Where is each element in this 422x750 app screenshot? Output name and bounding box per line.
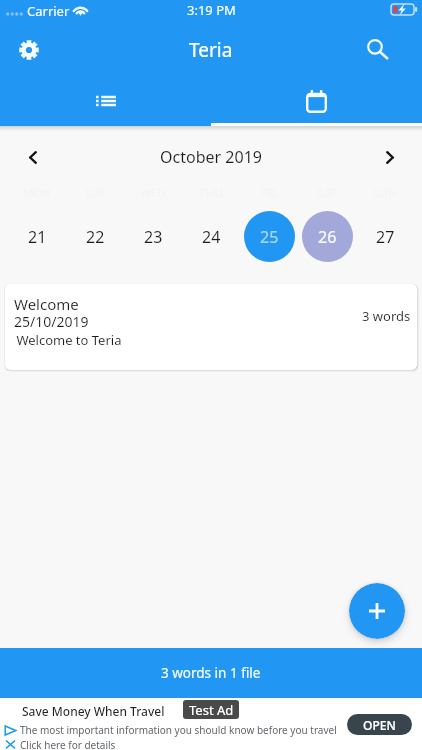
- button[interactable]: 23: [124, 210, 182, 262]
- staticText: 21: [28, 226, 47, 248]
- staticText: 3 words in 1 file: [161, 664, 261, 682]
- staticText: 24: [202, 226, 221, 248]
- button[interactable]: Calendar view: [211, 76, 422, 126]
- button[interactable]: 24: [182, 210, 240, 262]
- button[interactable]: 25: [240, 210, 298, 262]
- staticText: 23: [144, 226, 163, 248]
- staticText: 26: [318, 226, 337, 248]
- button[interactable]: 21: [8, 210, 66, 262]
- staticText: 25/10/2019: [14, 312, 89, 331]
- staticText: Teria: [189, 37, 233, 63]
- button[interactable]: 26: [298, 210, 356, 262]
- staticText: The most important information you shoul…: [20, 723, 337, 737]
- staticText: 22: [86, 226, 105, 248]
- staticText: Welcome: [14, 294, 79, 314]
- button[interactable]: Settings: [9, 30, 49, 70]
- button[interactable]: List view: [0, 76, 211, 126]
- staticText: October 2019: [160, 146, 262, 168]
- button[interactable]: OPEN: [347, 714, 412, 735]
- button[interactable]: Search: [358, 29, 398, 69]
- staticText: 3 words: [362, 307, 411, 325]
- button[interactable]: 22: [66, 210, 124, 262]
- staticText: 25: [260, 226, 279, 248]
- button[interactable]: 27: [356, 210, 414, 262]
- staticText: 27: [376, 226, 395, 248]
- button[interactable]: Welcome: [5, 284, 417, 370]
- button[interactable]: 3 words in 1 file: [0, 648, 422, 698]
- staticText: Welcome to Teria: [13, 331, 122, 349]
- button[interactable]: Previous month: [4, 138, 62, 176]
- staticText: Click here for details: [20, 738, 116, 750]
- staticText: Carrier: [27, 2, 70, 20]
- staticText: Save Money When Travel: [22, 703, 165, 719]
- button[interactable]: Add note: [349, 583, 405, 639]
- staticText: Test Ad: [189, 701, 234, 719]
- button[interactable]: Next month: [361, 138, 419, 176]
- staticText: 3:19 PM: [187, 1, 236, 19]
- staticText: OPEN: [363, 717, 396, 733]
